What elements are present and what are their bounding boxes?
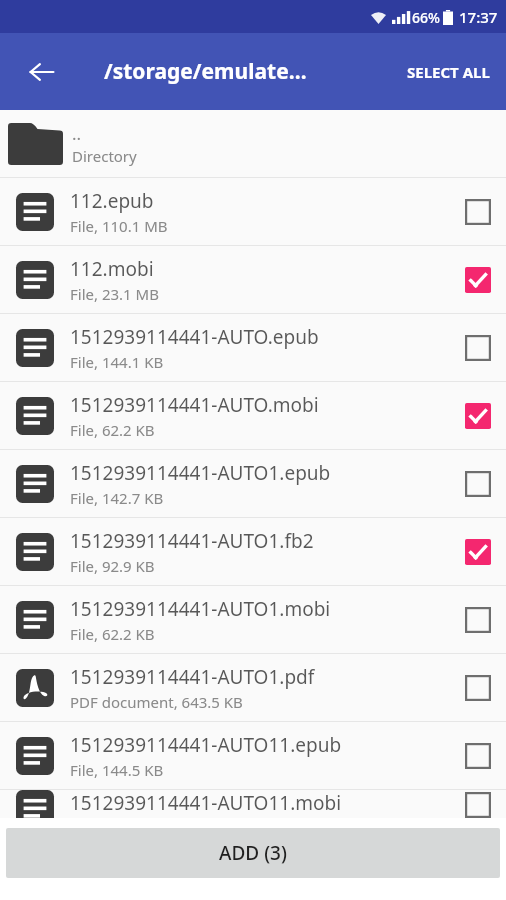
staticText: 1512939114441-AUTO11.epub (70, 732, 342, 758)
button[interactable]: Not selected (450, 790, 506, 820)
button[interactable]: Not selected (450, 178, 506, 245)
staticText: ADD (3) (219, 840, 287, 866)
staticText: Directory (72, 146, 137, 166)
button[interactable]: 1512939114441-AUTO.epub (0, 314, 506, 381)
button[interactable]: Selected (450, 246, 506, 313)
button[interactable]: 1512939114441-AUTO1.pdf (0, 654, 506, 721)
button[interactable]: Not selected (450, 450, 506, 517)
staticText: 1512939114441-AUTO.mobi (70, 392, 319, 418)
staticText: 17:37 (459, 7, 498, 27)
button[interactable]: Not selected (450, 654, 506, 721)
staticText: 1512939114441-AUTO1.fb2 (70, 528, 314, 554)
button[interactable]: 1512939114441-AUTO1.mobi (0, 586, 506, 653)
staticText: 66% (412, 8, 440, 27)
staticText: File, 144.5 KB (70, 760, 164, 780)
button[interactable]: Selected (450, 382, 506, 449)
staticText: 1512939114441-AUTO1.epub (70, 460, 331, 486)
button[interactable]: 1512939114441-AUTO11.mobi (0, 790, 506, 820)
staticText: 1512939114441-AUTO.epub (70, 324, 319, 350)
button[interactable]: Not selected (450, 314, 506, 381)
button[interactable]: Selected (450, 518, 506, 585)
staticText: SELECT ALL (407, 62, 490, 82)
staticText: File, 144.1 KB (70, 352, 164, 372)
button[interactable]: ADD (3) (6, 828, 500, 878)
button[interactable]: SELECT ALL (391, 48, 506, 96)
staticText: File, 62.2 KB (70, 624, 155, 644)
button[interactable]: 1512939114441-AUTO11.epub (0, 722, 506, 789)
staticText: 112.epub (70, 188, 154, 214)
button[interactable]: Back (18, 48, 66, 96)
staticText: File, 110.1 MB (70, 216, 168, 236)
staticText: 1512939114441-AUTO11.mobi (70, 790, 342, 816)
staticText: File, 62.2 KB (70, 420, 155, 440)
button[interactable]: 1512939114441-AUTO1.fb2 (0, 518, 506, 585)
button[interactable]: 112.mobi (0, 246, 506, 313)
staticText: File, 23.1 MB (70, 284, 159, 304)
staticText: 1512939114441-AUTO1.mobi (70, 596, 331, 622)
button[interactable]: 1512939114441-AUTO.mobi (0, 382, 506, 449)
button[interactable]: 1512939114441-AUTO1.epub (0, 450, 506, 517)
staticText: /storage/emulate… (104, 57, 307, 86)
staticText: .. (72, 122, 82, 145)
button[interactable]: 112.epub (0, 178, 506, 245)
staticText: 112.mobi (70, 256, 154, 282)
button[interactable]: Not selected (450, 586, 506, 653)
staticText: File, 92.9 KB (70, 556, 155, 576)
staticText: File, 142.7 KB (70, 488, 164, 508)
staticText: 1512939114441-AUTO1.pdf (70, 664, 315, 690)
button[interactable]: .. (0, 110, 506, 177)
button[interactable]: Not selected (450, 722, 506, 789)
staticText: PDF document, 643.5 KB (70, 692, 243, 712)
